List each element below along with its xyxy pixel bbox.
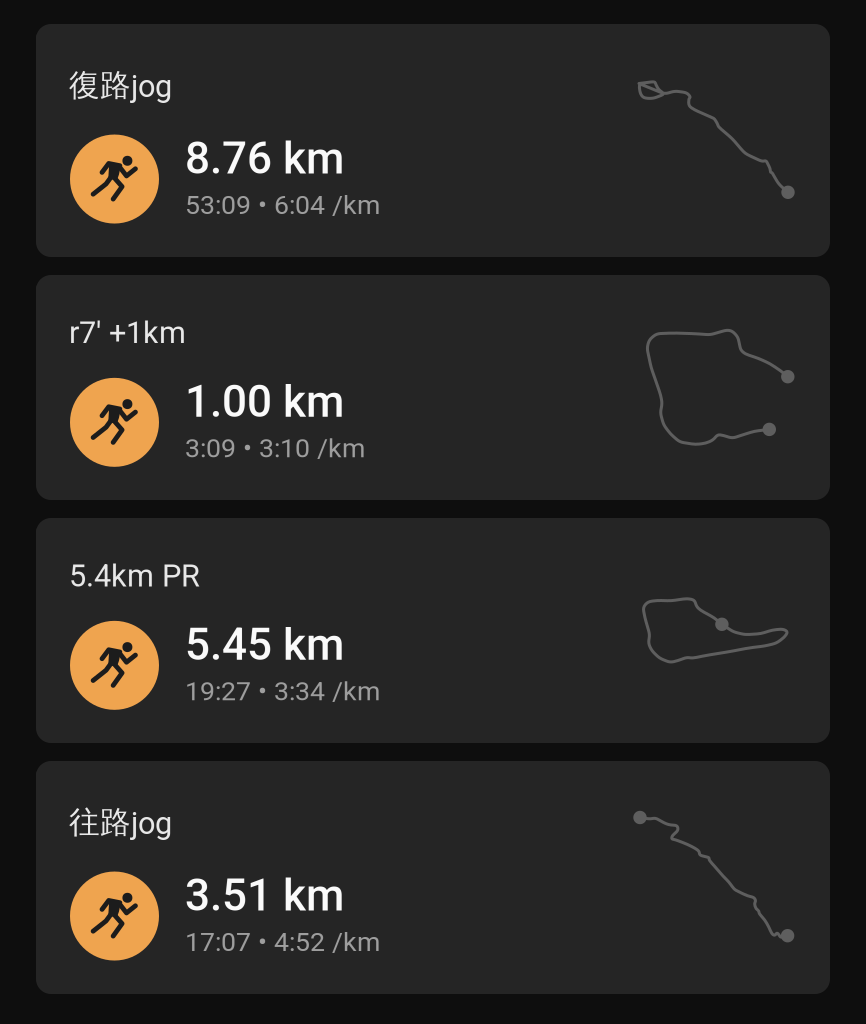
staticText: 53:09 • 6:04 /km — [185, 189, 380, 220]
staticText: 3:09 • 3:10 /km — [185, 432, 365, 464]
staticText: 往路jog — [69, 803, 172, 842]
button[interactable]: r7' +1km, 1.00 km, 3:09 • 3:10 /km — [36, 275, 830, 500]
button[interactable]: 往路jog, 3.51 km, 17:07 • 4:52 /km — [36, 761, 830, 994]
button[interactable]: 復路jog, 8.76 km, 53:09 • 6:04 /km — [36, 24, 830, 257]
staticText: 1.00 km — [185, 376, 344, 427]
button[interactable]: 5.4km PR, 5.45 km, 19:27 • 3:34 /km — [36, 518, 830, 743]
staticText: 8.76 km — [185, 133, 344, 184]
staticText: 3.51 km — [185, 870, 344, 921]
staticText: r7' +1km — [69, 315, 186, 351]
staticText: 19:27 • 3:34 /km — [185, 675, 380, 707]
staticText: 5.4km PR — [69, 558, 200, 594]
staticText: 17:07 • 4:52 /km — [185, 926, 380, 957]
staticText: 復路jog — [69, 66, 172, 105]
staticText: 5.45 km — [185, 619, 344, 670]
